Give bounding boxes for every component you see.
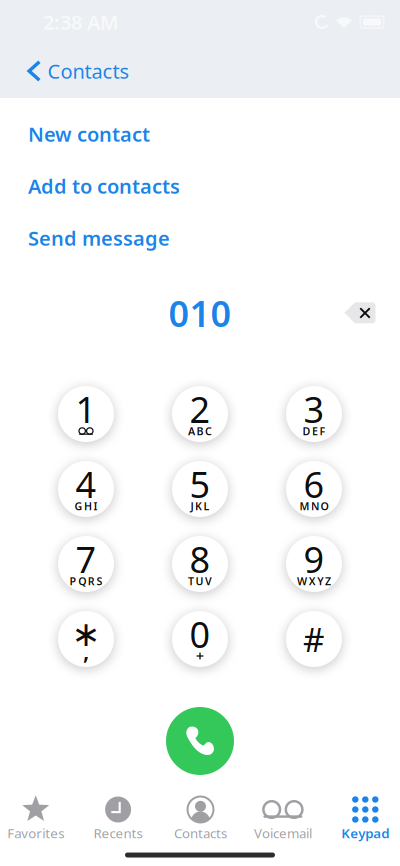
staticText: WXYZ bbox=[297, 574, 331, 588]
staticText: Contacts bbox=[47, 58, 129, 84]
staticText: 3 bbox=[303, 385, 324, 433]
button[interactable]: Contacts bbox=[0, 44, 400, 98]
button[interactable]: 1 bbox=[58, 386, 114, 442]
staticText: Add to contacts bbox=[28, 173, 180, 199]
button[interactable]: 7 bbox=[58, 536, 114, 592]
button[interactable]: ∗ bbox=[58, 611, 114, 667]
staticText: TUV bbox=[188, 574, 212, 588]
button[interactable]: Contacts bbox=[159, 792, 242, 842]
button[interactable]: Voicemail bbox=[242, 792, 324, 842]
button[interactable]: New contact bbox=[0, 125, 400, 143]
staticText: 010 bbox=[168, 289, 231, 337]
staticText: JKL bbox=[190, 499, 210, 513]
staticText: MNO bbox=[299, 499, 329, 513]
staticText: 1 bbox=[75, 385, 96, 433]
staticText: ABC bbox=[188, 424, 212, 438]
staticText: # bbox=[303, 617, 325, 661]
staticText: Favorites bbox=[7, 824, 64, 842]
button[interactable]: 4 bbox=[58, 461, 114, 517]
staticText: Contacts bbox=[174, 824, 227, 842]
staticText: GHI bbox=[74, 499, 98, 513]
staticText: ∗ bbox=[71, 614, 100, 654]
staticText: 7 bbox=[75, 535, 96, 583]
staticText: 8 bbox=[189, 535, 210, 583]
staticText: PQRS bbox=[70, 574, 102, 588]
staticText: Recents bbox=[94, 824, 143, 842]
button[interactable]: Call bbox=[166, 707, 234, 775]
staticText: 0 bbox=[189, 610, 210, 658]
button[interactable]: 0 bbox=[172, 611, 228, 667]
staticText: 2 bbox=[189, 385, 210, 433]
staticText: New contact bbox=[28, 121, 150, 147]
button[interactable]: # bbox=[286, 611, 342, 667]
button[interactable]: 9 bbox=[286, 536, 342, 592]
staticText: , bbox=[83, 636, 89, 666]
button[interactable]: Recents bbox=[77, 792, 159, 842]
button[interactable]: Add to contacts bbox=[0, 177, 400, 195]
staticText: Voicemail bbox=[254, 824, 312, 842]
button[interactable]: Keypad bbox=[324, 792, 400, 842]
staticText: 6 bbox=[303, 460, 324, 508]
button[interactable]: Delete bbox=[333, 291, 387, 335]
staticText: 2:38 AM bbox=[43, 9, 119, 35]
button[interactable]: Favorites bbox=[0, 792, 77, 842]
staticText: Send message bbox=[28, 225, 170, 251]
button[interactable]: 8 bbox=[172, 536, 228, 592]
button[interactable]: Send message bbox=[0, 229, 400, 247]
button[interactable]: 6 bbox=[286, 461, 342, 517]
staticText: 5 bbox=[189, 460, 210, 508]
button[interactable]: 3 bbox=[286, 386, 342, 442]
staticText: DEF bbox=[302, 424, 326, 438]
staticText: 4 bbox=[75, 460, 96, 508]
staticText: 9 bbox=[303, 535, 324, 583]
staticText: Keypad bbox=[341, 824, 389, 842]
button[interactable]: 2 bbox=[172, 386, 228, 442]
button[interactable]: 5 bbox=[172, 461, 228, 517]
